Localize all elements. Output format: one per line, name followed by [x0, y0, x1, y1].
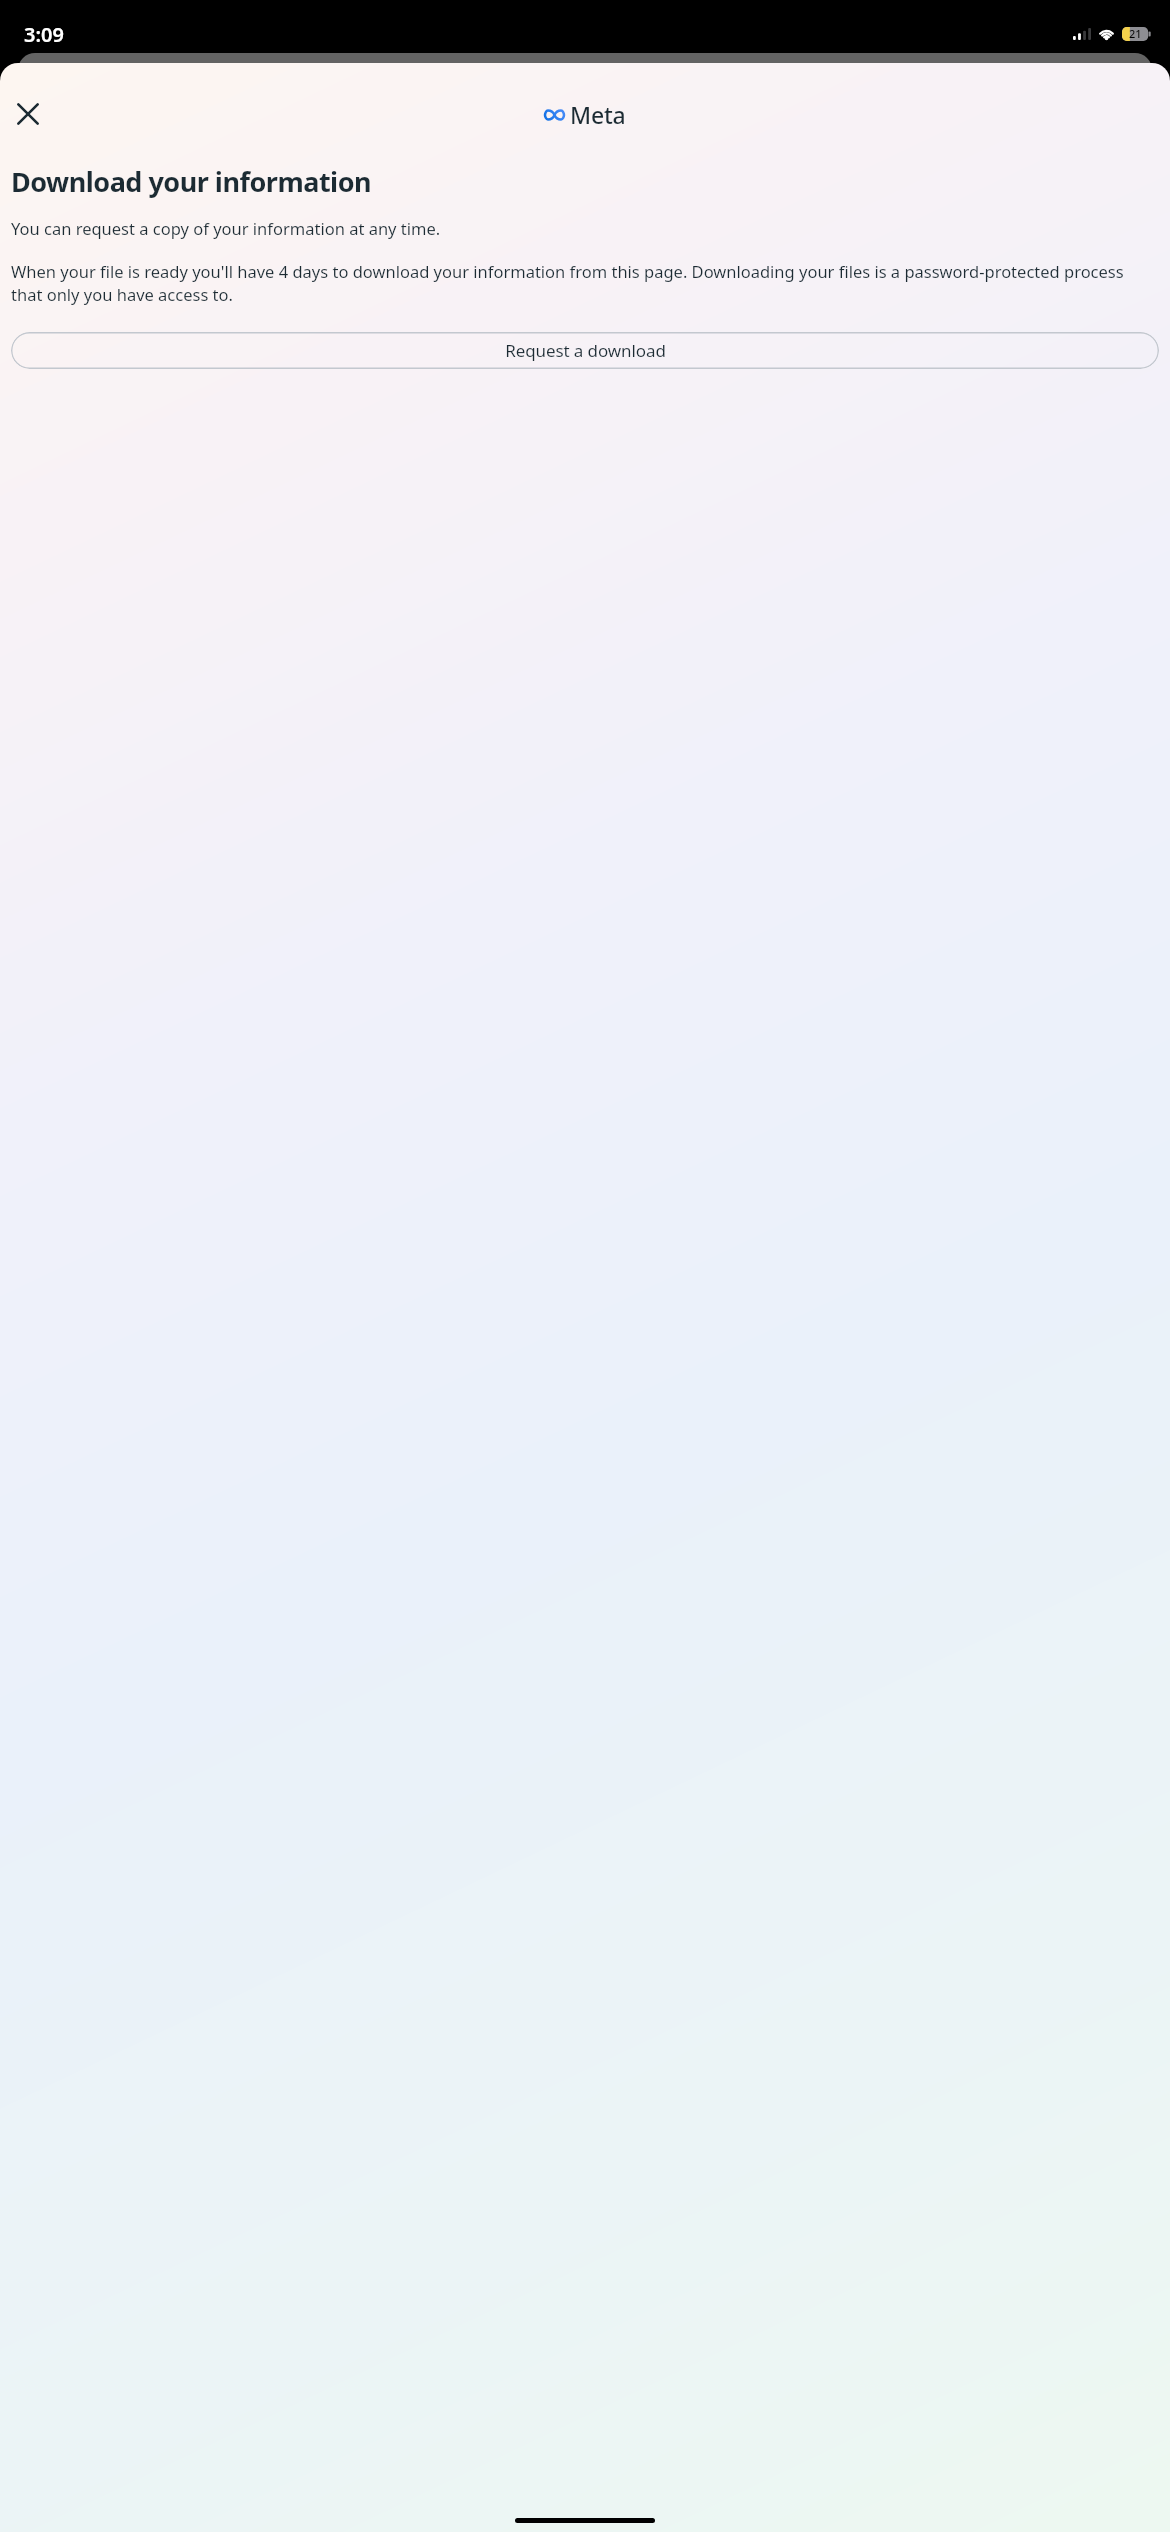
- staticText: When your file is ready you'll have 4 da…: [11, 260, 1159, 306]
- staticText: Download your information: [11, 163, 372, 200]
- staticText: 21: [1129, 26, 1142, 41]
- button[interactable]: Close: [6, 92, 50, 136]
- staticText: Meta: [570, 99, 626, 130]
- button[interactable]: Request a download: [11, 332, 1159, 369]
- staticText: Request a download: [505, 339, 666, 362]
- staticText: 3:09: [24, 21, 64, 48]
- staticText: You can request a copy of your informati…: [11, 217, 441, 239]
